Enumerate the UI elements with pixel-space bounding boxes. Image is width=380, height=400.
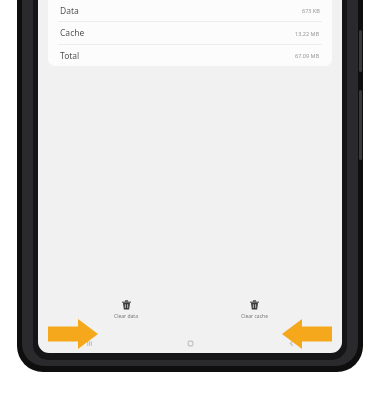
button[interactable]: Back [241, 333, 342, 353]
button[interactable]: Clear cache [226, 295, 282, 320]
button[interactable]: Data [48, 0, 332, 21]
staticText: 13.22 MB [295, 30, 320, 37]
button[interactable]: Total [48, 45, 332, 66]
staticText: Clear data [114, 313, 138, 320]
staticText: 673 KB [302, 7, 320, 14]
staticText: Cache [60, 27, 85, 39]
staticText: Total [60, 50, 80, 62]
staticText: Data [60, 5, 79, 17]
button[interactable]: Clear data [98, 295, 154, 320]
staticText: 67.09 MB [295, 52, 320, 59]
staticText: Clear cache [241, 313, 268, 320]
button[interactable]: Cache [48, 22, 332, 44]
button[interactable]: Recent apps [38, 333, 140, 353]
button[interactable]: Home [140, 333, 241, 353]
